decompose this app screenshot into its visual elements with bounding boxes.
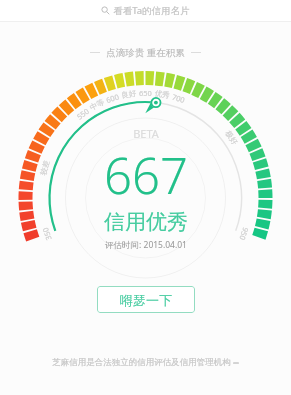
staticText: 看看Ta的信用名片 — [113, 4, 190, 17]
staticText: 芝麻信用是合法独立的信用评估及信用管理机构 — [52, 357, 231, 368]
button[interactable]: Search — [0, 0, 291, 21]
button[interactable]: 嘚瑟一下 — [97, 286, 195, 313]
staticText: 点滴珍贵 重在积累 — [106, 46, 185, 59]
staticText: 667 — [104, 142, 188, 209]
staticText: 评估时间: 2015.04.01 — [105, 239, 187, 251]
staticText: 信用优秀 — [104, 209, 188, 235]
staticText: BETA — [133, 126, 159, 141]
staticText: 嘚瑟一下 — [120, 292, 172, 308]
other: Search — [101, 6, 110, 15]
